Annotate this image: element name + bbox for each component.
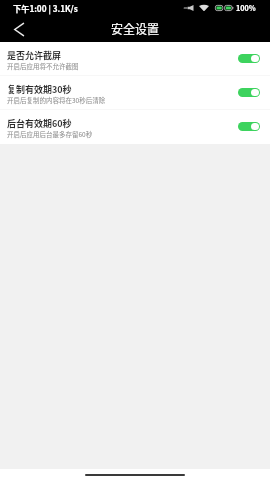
button[interactable]: Toggle [238,54,260,63]
button[interactable]: 是否允许截屏 [0,42,270,76]
button[interactable]: 后台有效期60秒 [0,110,270,144]
staticText: 复制有效期30秒 [7,83,72,96]
staticText: 下午1:00 | 3.1K/s [13,2,78,14]
staticText: 开启后应用后台最多存留60秒 [7,129,93,138]
button[interactable]: 复制有效期30秒 [0,76,270,110]
button[interactable]: Home [85,474,185,476]
button[interactable]: Back [0,16,34,42]
staticText: 开启后复制的内容将在30秒后清除 [7,95,106,104]
button[interactable]: Toggle [238,122,260,131]
staticText: 100% [236,3,256,13]
button[interactable]: Toggle [238,88,260,97]
staticText: 是否允许截屏 [7,49,62,62]
staticText: 安全设置 [111,20,160,37]
staticText: 后台有效期60秒 [7,117,72,130]
staticText: 开启后应用将不允许截图 [7,61,79,70]
